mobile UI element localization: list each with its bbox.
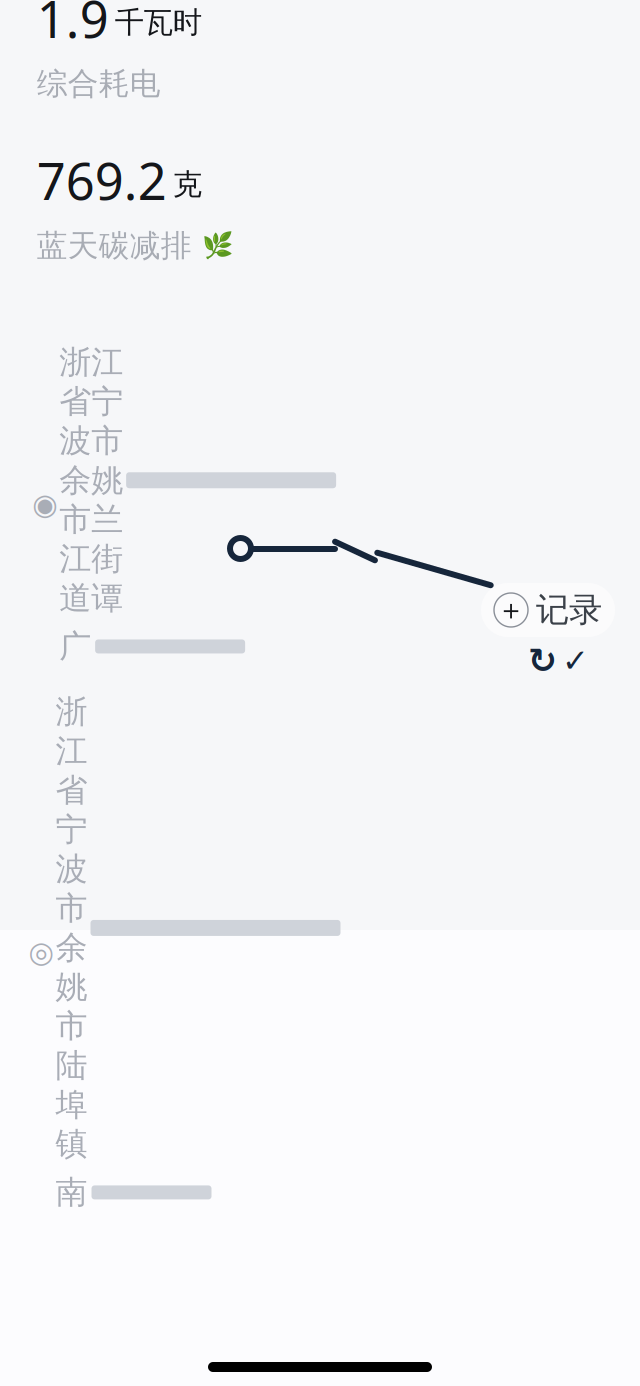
staticText: 蓝天碳减排 — [37, 227, 192, 265]
staticText: 浙江省宁波市余姚市陆埠镇 — [55, 692, 87, 1164]
staticText: 广 — [59, 627, 91, 666]
staticText: ◉ — [32, 488, 58, 521]
staticText: 1.9 — [37, 0, 109, 52]
staticText: 克 — [173, 166, 202, 202]
staticText: 南 — [55, 1173, 87, 1212]
staticText: 🌿 — [202, 231, 234, 260]
staticText: 浙江省宁波市余姚市兰江街道谭 — [59, 343, 123, 618]
staticText: 千瓦时 — [115, 4, 202, 40]
staticText: ↻ — [528, 641, 557, 680]
staticText: 综合耗电 — [37, 65, 161, 103]
staticText: 769.2 — [37, 147, 167, 214]
button[interactable]: ＋ — [481, 583, 615, 637]
staticText: ✓ — [562, 642, 589, 679]
staticText: ◎ — [28, 935, 54, 969]
staticText: 记录 — [536, 589, 602, 630]
staticText: ＋ — [497, 593, 525, 627]
